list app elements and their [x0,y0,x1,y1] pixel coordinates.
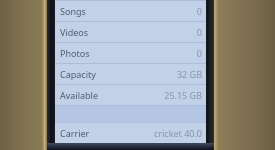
button[interactable]: Available [55,85,206,105]
button[interactable]: Carrier [55,123,206,143]
button[interactable]: Capacity [55,64,206,84]
staticText: cricket 40.0 [153,127,202,139]
button[interactable]: Photos [55,43,206,63]
staticText: Songs [60,5,86,17]
button[interactable]: Songs [55,1,206,21]
staticText: 32 GB [176,68,202,80]
staticText: 25.15 GB [164,89,202,101]
staticText: Capacity [60,68,96,80]
staticText: Photos [60,47,90,59]
staticText: 0 [196,26,202,38]
staticText: 0 [196,5,202,17]
button[interactable]: Videos [55,22,206,42]
staticText: 0 [196,47,202,59]
staticText: Available [60,89,98,101]
staticText: Videos [60,26,89,38]
staticText: Carrier [60,127,90,139]
